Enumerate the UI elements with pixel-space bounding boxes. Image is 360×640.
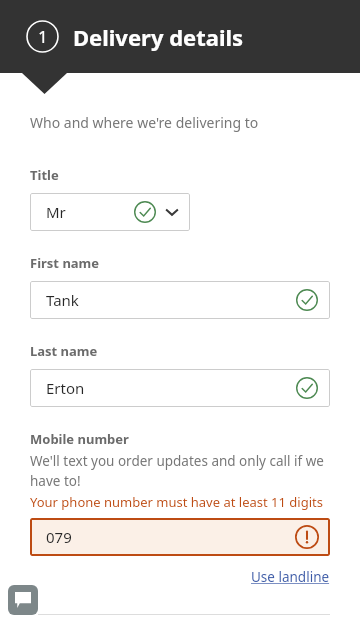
- button[interactable]: 079: [30, 518, 330, 556]
- button[interactable]: Tank: [30, 281, 330, 319]
- staticText: Who and where we're delivering to: [30, 113, 259, 132]
- staticText: Use landline: [251, 568, 330, 586]
- staticText: Delivery details: [73, 22, 244, 52]
- staticText: Mr: [46, 202, 66, 222]
- staticText: Erton: [46, 378, 85, 398]
- staticText: Last name: [30, 342, 98, 360]
- staticText: Tank: [46, 290, 79, 310]
- staticText: 1: [38, 25, 48, 48]
- button[interactable]: Open chat: [8, 585, 38, 615]
- button[interactable]: Mr: [30, 193, 190, 231]
- staticText: First name: [30, 254, 100, 272]
- staticText: Title: [30, 166, 59, 184]
- button[interactable]: Erton: [30, 369, 330, 407]
- staticText: Your phone number must have at least 11 …: [30, 493, 323, 511]
- staticText: Mobile number: [30, 430, 129, 448]
- button[interactable]: Use landline: [251, 568, 330, 586]
- staticText: We'll text you order updates and only ca…: [30, 452, 330, 490]
- staticText: 079: [46, 527, 72, 547]
